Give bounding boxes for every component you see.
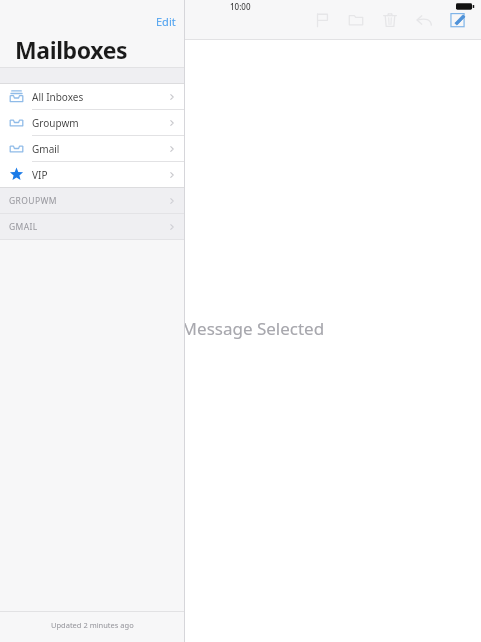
staticText: GROUPWM [9,195,57,207]
staticText: Mailboxes [15,34,128,65]
button[interactable]: Groupwm [0,110,184,135]
button[interactable]: Edit [148,13,184,30]
staticText: No Message Selected [154,317,325,340]
staticText: 10:00 [230,1,251,12]
button[interactable]: Delete [373,0,407,39]
staticText: GMAIL [9,221,38,233]
button[interactable]: GROUPWM [0,188,184,213]
staticText: Updated 2 minutes ago [51,620,134,630]
button[interactable]: GMAIL [0,214,184,239]
button[interactable]: Compose [441,0,475,39]
button[interactable]: All Inboxes [0,84,184,109]
staticText: All Inboxes [32,90,84,104]
staticText: Gmail [32,142,60,156]
staticText: Groupwm [32,116,79,130]
staticText: VIP [32,168,48,182]
button[interactable]: Gmail [0,136,184,161]
button[interactable]: VIP [0,162,184,187]
staticText: Edit [156,14,176,29]
